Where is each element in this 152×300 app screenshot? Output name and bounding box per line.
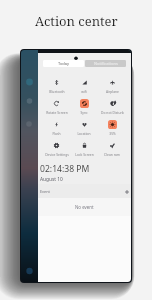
button[interactable]: Sync [70,98,98,119]
staticText: Notifications [94,61,118,66]
button[interactable]: Clean ram [98,140,126,161]
staticText: Clean ram [104,152,120,156]
staticText: Rotate Screen [46,110,68,114]
staticText: Device Settings [45,152,69,156]
button[interactable]: Location [70,119,98,140]
staticText: Flash [52,131,61,135]
button[interactable]: Do not Disturb [98,98,126,119]
staticText: Today [58,61,70,66]
staticText: 02:14:38 PM [40,163,90,175]
button[interactable]: Notifications [85,60,126,67]
staticText: Do not Disturb [101,110,124,114]
staticText: Action center [35,12,118,30]
staticText: Lock Screen [75,152,94,156]
staticText: 35% [109,131,116,135]
button[interactable]: Rotate Screen [43,98,70,119]
staticText: Sync [80,110,88,114]
staticText: No event [75,204,94,210]
button[interactable]: Action center [0,0,152,42]
staticText: Airplane [106,89,119,93]
button[interactable]: Add event [124,189,129,194]
button[interactable]: Flash [43,119,70,140]
staticText: Bluetooth [49,89,65,93]
button[interactable]: Airplane [98,77,126,98]
staticText: August 10 [40,176,63,183]
button[interactable]: Lock Screen [70,140,98,161]
button[interactable]: Today [43,60,84,67]
button[interactable]: wifi [70,77,98,98]
button[interactable]: Device Settings [43,140,70,161]
staticText: Location [77,131,91,135]
button[interactable]: Bluetooth [43,77,70,98]
button[interactable]: 35% [98,119,126,140]
staticText: wifi [81,89,87,93]
staticText: Event [40,189,50,194]
